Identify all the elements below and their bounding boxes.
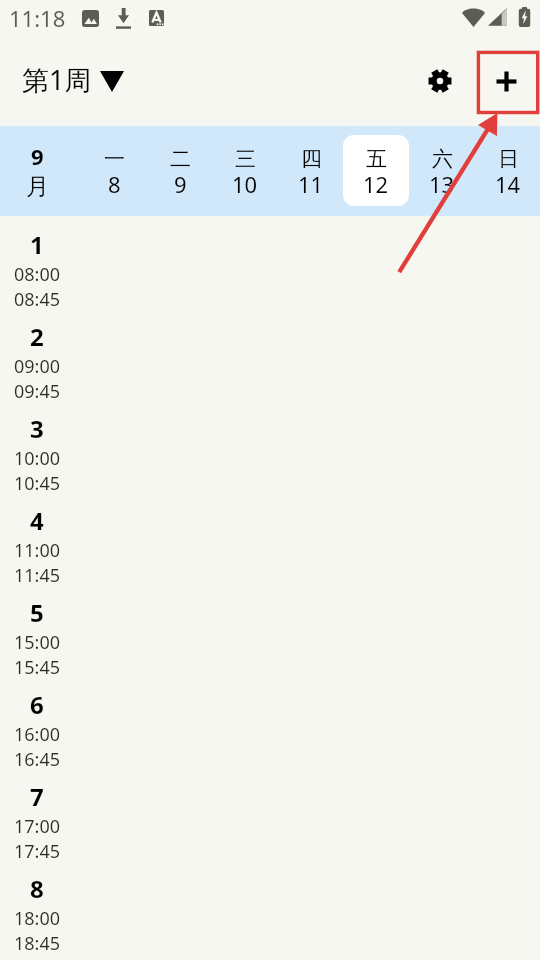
staticText: 2 xyxy=(30,320,44,353)
staticText: 第1周 xyxy=(22,61,92,98)
staticText: 14 xyxy=(495,169,521,199)
staticText: 16:45 xyxy=(14,747,61,772)
button[interactable]: 日 xyxy=(475,135,540,206)
button[interactable]: 7 xyxy=(0,768,540,860)
staticText: 一 xyxy=(104,146,125,172)
button[interactable]: 六 xyxy=(409,135,475,206)
button[interactable]: 5 xyxy=(0,584,540,676)
staticText: 08:45 xyxy=(14,287,61,312)
staticText: 10:00 xyxy=(14,446,61,471)
staticText: 17:45 xyxy=(14,839,61,864)
staticText: 六 xyxy=(432,146,453,172)
button[interactable]: 五 xyxy=(343,135,409,206)
staticText: 五 xyxy=(366,146,387,172)
button[interactable]: 1 xyxy=(0,216,540,308)
staticText: 15:45 xyxy=(14,655,61,680)
staticText: 15:00 xyxy=(14,630,61,655)
button[interactable]: 2 xyxy=(0,308,540,400)
staticText: 11:18 xyxy=(9,3,66,33)
staticText: 9 xyxy=(31,141,44,171)
staticText: 18:00 xyxy=(14,906,61,931)
staticText: 四 xyxy=(301,146,322,172)
staticText: 12 xyxy=(363,169,389,199)
staticText: 8 xyxy=(108,169,121,199)
staticText: 11 xyxy=(298,169,324,199)
staticText: 13 xyxy=(429,169,455,199)
staticText: 10:45 xyxy=(14,471,61,496)
button[interactable]: 四 xyxy=(278,135,344,206)
staticText: 08:00 xyxy=(14,262,61,287)
staticText: 日 xyxy=(498,146,519,172)
staticText: 5 xyxy=(30,596,44,629)
staticText: 8 xyxy=(30,872,44,905)
staticText: 4 xyxy=(30,504,44,537)
button[interactable]: 4 xyxy=(0,492,540,584)
staticText: 6 xyxy=(30,688,44,721)
button[interactable]: 6 xyxy=(0,676,540,768)
staticText: 11:45 xyxy=(14,563,61,588)
staticText: 09:45 xyxy=(14,379,61,404)
button[interactable]: 一 xyxy=(81,135,147,206)
staticText: 17:00 xyxy=(14,814,61,839)
staticText: 三 xyxy=(235,146,256,172)
staticText: 10 xyxy=(232,169,258,199)
staticText: 1 xyxy=(30,228,44,261)
staticText: 3 xyxy=(30,412,44,445)
staticText: 二 xyxy=(170,146,191,172)
button[interactable]: 3 xyxy=(0,400,540,492)
staticText: 09:00 xyxy=(14,354,61,379)
button[interactable]: 8 xyxy=(0,860,540,952)
staticText: 9 xyxy=(174,169,187,199)
staticText: 7 xyxy=(30,780,44,813)
staticText: 18:45 xyxy=(14,931,61,956)
button[interactable]: Add xyxy=(482,57,530,105)
staticText: 月 xyxy=(26,172,49,201)
button[interactable]: 三 xyxy=(212,135,278,206)
button[interactable]: 第1周 xyxy=(22,61,124,98)
button[interactable]: 二 xyxy=(147,135,213,206)
button[interactable]: 9 xyxy=(0,126,74,216)
staticText: 11:00 xyxy=(14,538,61,563)
button[interactable]: Settings xyxy=(416,57,464,105)
staticText: 16:00 xyxy=(14,722,61,747)
